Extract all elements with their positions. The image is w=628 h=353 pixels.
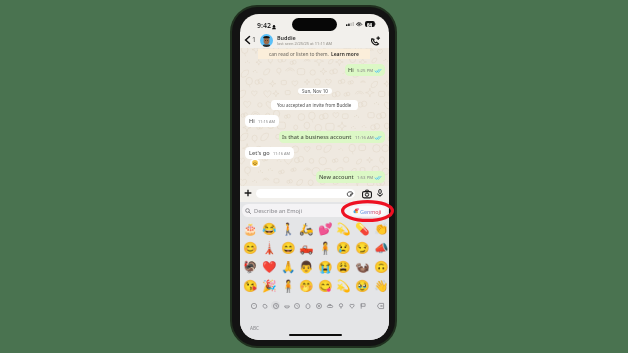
staticText: 🦃 (243, 260, 258, 274)
staticText: Genmoji (360, 208, 382, 215)
button[interactable]: 🛻 (297, 241, 316, 260)
staticText: 💫 (336, 222, 351, 236)
button[interactable]: 👋 (372, 279, 389, 298)
button[interactable] (260, 34, 273, 47)
button[interactable]: 🙏 (279, 260, 298, 279)
staticText: 🎂 (243, 222, 258, 236)
staticText: 🤭 (299, 279, 314, 293)
staticText: 11:15 AM (258, 119, 275, 124)
staticText: 📣 (374, 241, 389, 255)
button[interactable]: Delete (375, 300, 386, 311)
button[interactable] (250, 159, 260, 167)
button[interactable]: 💫 (334, 222, 353, 241)
button[interactable]: 😩 (334, 260, 353, 279)
button[interactable]: Voice message (377, 189, 383, 197)
staticText: 😏 (355, 241, 370, 255)
staticText: Describe an Emoji (254, 207, 302, 215)
staticText: Buddie (277, 34, 296, 41)
button[interactable]: 💕 (316, 222, 335, 241)
button[interactable]: 👨 (297, 260, 316, 279)
staticText: Sun, Nov 10 (302, 88, 328, 94)
button[interactable]: Genmoji (350, 206, 385, 216)
staticText: 🙏 (281, 260, 296, 274)
button[interactable]: 👏 (372, 222, 389, 241)
button[interactable]: Emoji category (357, 300, 368, 311)
staticText: 11:16 AM (273, 151, 290, 156)
button[interactable]: 🎉 (260, 279, 279, 298)
button[interactable]: 🧍 (316, 241, 335, 260)
other: Sticker (347, 191, 353, 197)
button[interactable]: 😘 (241, 279, 260, 298)
button[interactable]: 💫 (334, 279, 353, 298)
staticText: 😊 (243, 241, 258, 255)
button[interactable]: Sun, Nov 10 (298, 88, 332, 94)
button[interactable]: 😄 (279, 241, 298, 260)
staticText: 9:42 (257, 21, 271, 31)
button[interactable]: 😭 (316, 260, 335, 279)
button[interactable]: Describe an Emoji (242, 204, 388, 217)
button[interactable]: 🎂 (241, 222, 260, 241)
staticText: 😢 (336, 241, 351, 255)
button[interactable]: Back (243, 34, 259, 46)
button[interactable]: Emoji category (335, 300, 346, 311)
button[interactable]: ❤️ (260, 260, 279, 279)
staticText: Learn more (331, 51, 359, 58)
button[interactable]: You accepted an invite from Buddie (271, 100, 358, 110)
button[interactable]: can read or listen to them. (258, 49, 370, 59)
button[interactable]: Let's go (245, 147, 294, 159)
button[interactable]: Hi (245, 115, 279, 127)
staticText: 💊 (355, 222, 370, 236)
button[interactable]: 🙃 (372, 260, 389, 279)
button[interactable]: Emoji category (248, 300, 259, 311)
button[interactable]: Buddie (277, 34, 333, 46)
button[interactable]: 😂 (260, 222, 279, 241)
button[interactable]: 😏 (353, 241, 372, 260)
button[interactable]: Attach (244, 189, 252, 197)
button[interactable]: 🧍 (279, 279, 298, 298)
staticText: ABC (250, 325, 259, 331)
staticText: You accepted an invite from Buddie (277, 102, 352, 108)
button[interactable]: Sticker (256, 189, 355, 198)
button[interactable]: 🤭 (297, 279, 316, 298)
button[interactable]: 🗼 (260, 241, 279, 260)
staticText: 😭 (318, 260, 333, 274)
staticText: Is that a business account (282, 133, 352, 141)
button[interactable]: 😊 (241, 241, 260, 260)
button[interactable]: Call (370, 35, 381, 46)
staticText: 🛻 (299, 241, 314, 255)
staticText: 🦦 (355, 260, 370, 274)
staticText: 😄 (281, 241, 296, 255)
staticText: 😘 (243, 279, 258, 293)
button[interactable]: Emoji category (281, 300, 292, 311)
button[interactable]: 😋 (316, 279, 335, 298)
staticText: 🚶 (281, 222, 296, 236)
button[interactable]: 🚶 (279, 222, 298, 241)
button[interactable]: Emoji category (291, 300, 302, 311)
staticText: 1 (252, 35, 257, 45)
button[interactable]: Is that a business account (279, 131, 385, 143)
button[interactable]: Emoji category (259, 300, 270, 311)
staticText: 🙃 (374, 260, 389, 274)
staticText: Hi (249, 117, 255, 125)
button[interactable]: 🥹 (353, 279, 372, 298)
other: Back (245, 36, 250, 44)
staticText: 🧍 (281, 279, 296, 293)
button[interactable]: 💊 (353, 222, 372, 241)
button[interactable]: Emoji category (302, 300, 313, 311)
staticText: 64 (367, 22, 373, 28)
button[interactable]: Emoji category (270, 300, 281, 311)
button[interactable]: 🦦 (353, 260, 372, 279)
button[interactable]: 🦃 (241, 260, 260, 279)
button[interactable]: 😢 (334, 241, 353, 260)
staticText: 🧍 (318, 241, 333, 255)
button[interactable]: Camera (362, 190, 372, 198)
staticText: 👋 (374, 279, 389, 293)
button[interactable]: 📣 (372, 241, 389, 260)
button[interactable]: Emoji category (313, 300, 324, 311)
button[interactable]: Emoji category (346, 300, 357, 311)
button[interactable]: Hi (345, 64, 385, 76)
button[interactable]: New account (316, 171, 385, 183)
button[interactable]: Emoji category (324, 300, 335, 311)
staticText: can read or listen to them. (269, 51, 331, 58)
button[interactable]: 🛵 (297, 222, 316, 241)
